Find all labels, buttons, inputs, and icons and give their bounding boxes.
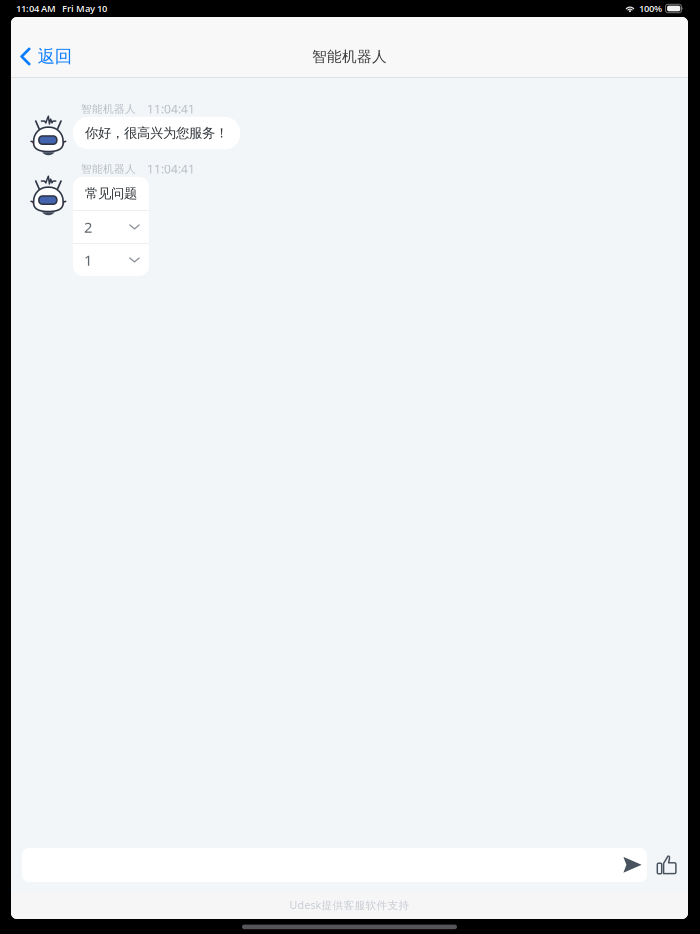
staticText: 常见问题	[85, 185, 137, 202]
staticText: 智能机器人	[312, 47, 387, 65]
button[interactable]: Like	[647, 848, 687, 882]
staticText: Fri May 10	[62, 2, 107, 15]
staticText: 100%	[639, 2, 662, 15]
button[interactable]: 返回	[11, 35, 82, 78]
staticText: 11:04:41	[147, 101, 195, 117]
button[interactable]: 1	[73, 244, 149, 276]
staticText: 智能机器人	[81, 102, 136, 115]
staticText: 你好，很高兴为您服务！	[85, 125, 228, 141]
button[interactable]: 2	[73, 211, 149, 243]
button[interactable]: Send	[623, 848, 647, 882]
staticText: 返回	[38, 46, 72, 67]
staticText: 智能机器人	[81, 162, 136, 175]
staticText: 11:04:41	[147, 161, 195, 177]
staticText: 11:04 AM	[16, 2, 56, 15]
staticText: 2	[84, 217, 92, 237]
staticText: 1	[84, 250, 92, 270]
staticText: Udesk提供客服软件支持	[289, 898, 409, 912]
